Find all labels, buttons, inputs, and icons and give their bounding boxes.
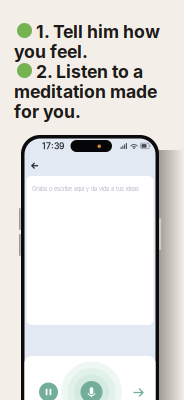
staticText: 17:39 [42,141,64,150]
staticText: 2. Listen to a [36,61,143,81]
button[interactable]: Record [24,138,155,400]
staticText: meditation made [14,81,157,101]
staticText: for you. [14,101,81,121]
staticText: you feel. [14,41,88,61]
staticText: Graba o escribe aquí y da vida a tus ide… [32,186,139,192]
staticText: 1. Tell him how [36,21,160,41]
button[interactable]: Pause [24,138,155,400]
button[interactable]: Send [24,138,155,400]
button[interactable]: Back [24,138,155,400]
